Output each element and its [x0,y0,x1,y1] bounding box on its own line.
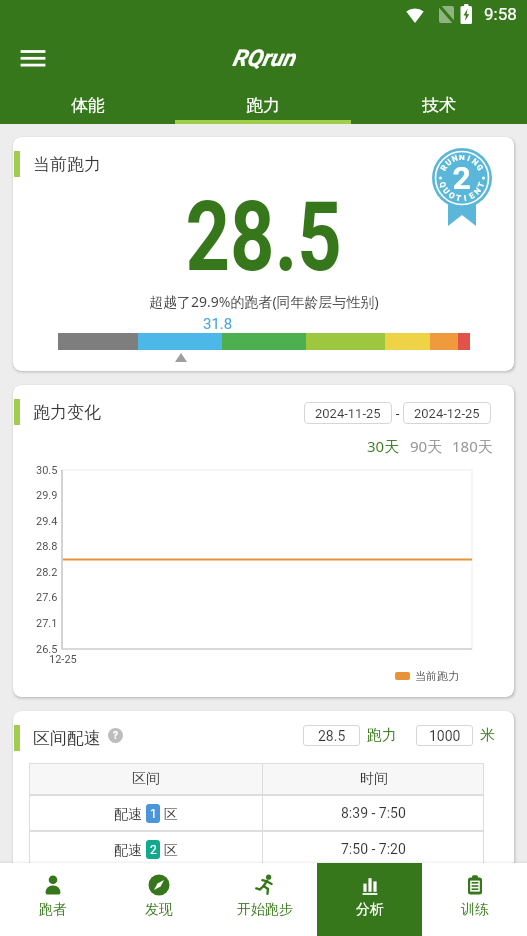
staticText: 跑力 [246,95,280,116]
staticText: 9:58 [484,4,517,24]
button[interactable]: 1000 [416,725,473,746]
button[interactable]: 28.5 [303,725,360,746]
button[interactable]: 30天 [367,436,400,456]
staticText: 跑力 [367,726,397,745]
staticText: 28.5 [318,728,346,744]
button[interactable]: 2024-12-25 [403,402,491,424]
staticText: RQrun [232,45,295,72]
staticText: 米 [480,726,495,745]
staticText: 7:50 - 7:20 [341,841,406,857]
button[interactable]: 技术 [351,88,527,124]
button[interactable]: 90天 [410,436,443,456]
staticText: 2024-12-25 [414,406,480,421]
staticText: - [392,404,403,422]
staticText: ? [113,730,118,742]
staticText: 区间 [132,770,160,788]
staticText: 时间 [360,770,388,788]
staticText: 开始跑步 [237,901,293,919]
staticText: 配速 [114,840,146,859]
staticText: 8:39 - 7:50 [341,805,406,821]
button[interactable]: 2024-11-25 [304,402,392,424]
button[interactable]: 180天 [452,436,493,456]
staticText: 技术 [422,95,456,116]
staticText: 配速 [114,804,146,823]
staticText: 跑者 [39,901,67,919]
button[interactable]: 跑力 [175,88,351,124]
staticText: 2024-11-25 [315,406,381,421]
staticText: 发现 [145,901,173,919]
button[interactable] [14,39,52,77]
staticText: 跑力变化 [33,402,101,423]
staticText: 1 [150,807,157,821]
staticText: 分析 [356,901,384,919]
staticText: 2 [150,843,157,857]
staticText: 超越了29.9%的跑者(同年龄层与性别) [149,292,379,311]
button[interactable]: 分析 [317,863,422,936]
staticText: 区 [160,804,178,823]
button[interactable]: 发现 [106,863,212,936]
staticText: 1000 [429,728,461,744]
button[interactable]: 训练 [422,863,527,936]
staticText: 区 [160,840,178,859]
button[interactable]: 体能 [0,88,175,124]
button[interactable]: 开始跑步 [212,863,317,936]
staticText: 当前跑力 [33,154,101,175]
staticText: 区间配速 [33,728,101,749]
staticText: 训练 [461,901,489,919]
button[interactable]: 跑者 [0,863,106,936]
staticText: 体能 [71,95,105,116]
